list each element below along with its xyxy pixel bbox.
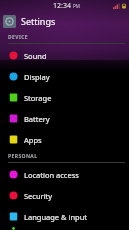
staticText: PERSONAL	[8, 153, 38, 160]
staticText: 12:34	[53, 1, 71, 11]
button[interactable]: Sound	[0, 45, 129, 66]
staticText: Language & input	[24, 212, 87, 222]
button[interactable]: Settings	[0, 11, 129, 31]
button[interactable]: Backup & reset	[0, 227, 129, 230]
button[interactable]: Security	[0, 185, 129, 206]
staticText: Storage	[24, 93, 52, 103]
staticText: Sound	[24, 51, 47, 61]
button[interactable]: Location access	[0, 164, 129, 185]
staticText: Apps	[24, 135, 42, 145]
button[interactable]: Display	[0, 66, 129, 87]
staticText: Display	[24, 72, 50, 82]
button[interactable]: Apps	[0, 129, 129, 150]
button[interactable]: Language & input	[0, 206, 129, 227]
staticText: Security	[24, 191, 53, 201]
button[interactable]: Battery	[0, 108, 129, 129]
staticText: Battery	[24, 114, 50, 124]
staticText: Settings	[21, 15, 56, 27]
staticText: PM	[73, 3, 80, 9]
staticText: DEVICE	[8, 34, 29, 41]
button[interactable]: Storage	[0, 87, 129, 108]
staticText: Location access	[24, 170, 79, 180]
